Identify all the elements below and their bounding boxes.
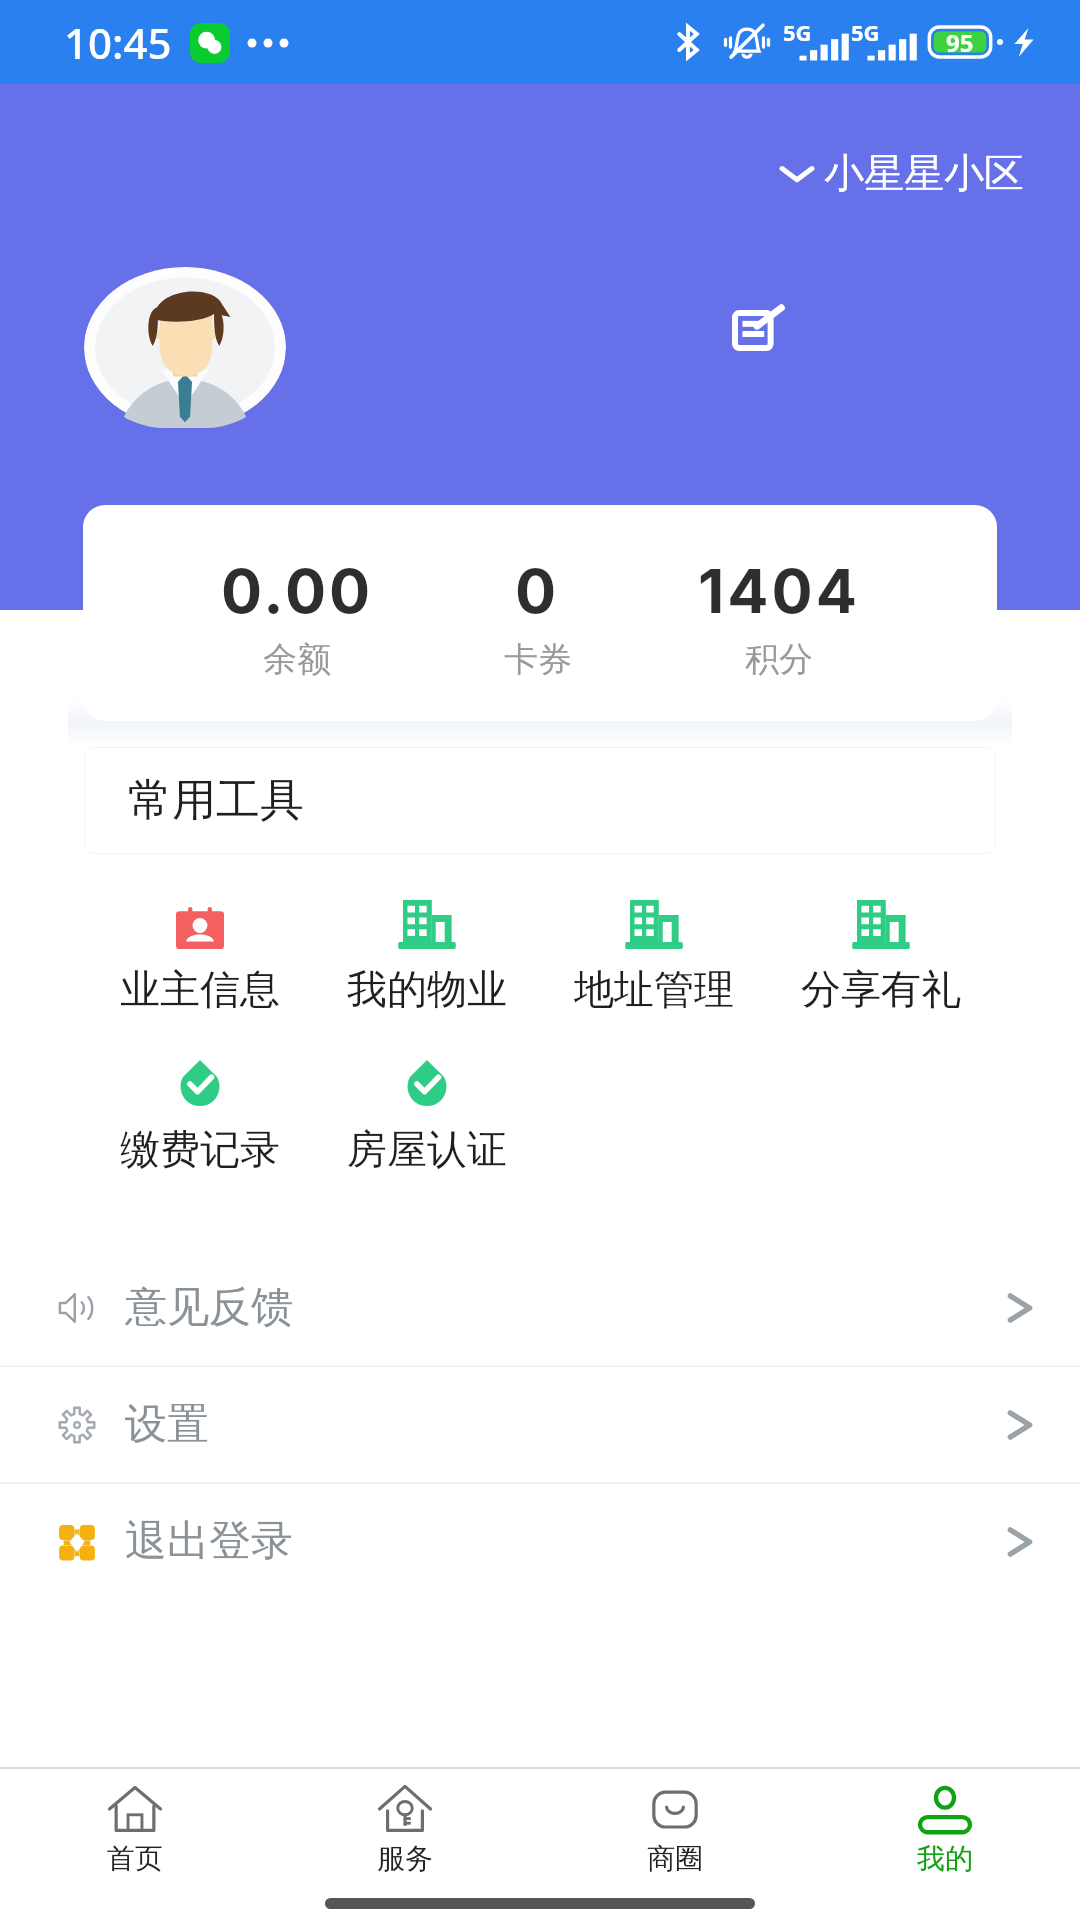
button[interactable]: 房屋认证: [313, 1055, 540, 1178]
staticText: 10:45: [64, 14, 172, 71]
button[interactable]: 小星星小区: [771, 142, 1028, 204]
staticText: 我的物业: [347, 964, 507, 1014]
staticText: 5G: [851, 17, 880, 47]
button[interactable]: 首页: [0, 1769, 270, 1887]
staticText: 服务: [377, 1841, 433, 1876]
staticText: 95: [946, 26, 974, 59]
button[interactable]: 我的: [810, 1769, 1080, 1887]
staticText: 房屋认证: [347, 1124, 507, 1174]
staticText: 0: [515, 554, 560, 628]
button[interactable]: 商圈: [540, 1769, 810, 1887]
staticText: 1404: [698, 554, 860, 628]
button[interactable]: 业主信息: [86, 895, 313, 1018]
staticText: 退出登录: [125, 1515, 293, 1568]
staticText: 余额: [263, 638, 331, 681]
staticText: 首页: [107, 1841, 163, 1876]
staticText: 缴费记录: [120, 1124, 280, 1174]
button[interactable]: 头像: [84, 267, 286, 428]
staticText: 卡券: [504, 638, 572, 681]
staticText: 意见反馈: [125, 1281, 293, 1334]
staticText: 常用工具: [128, 773, 304, 828]
button[interactable]: 地址管理: [540, 895, 767, 1018]
button[interactable]: 分享有礼: [767, 895, 994, 1018]
staticText: 积分: [745, 638, 813, 681]
button[interactable]: 退出登录: [0, 1484, 1080, 1599]
staticText: 分享有礼: [801, 964, 961, 1014]
button[interactable]: 服务: [270, 1769, 540, 1887]
button[interactable]: 编辑资料: [714, 284, 802, 372]
staticText: 商圈: [647, 1841, 703, 1876]
staticText: 小星星小区: [824, 148, 1024, 198]
button[interactable]: 缴费记录: [86, 1055, 313, 1178]
button[interactable]: 我的物业: [313, 895, 540, 1018]
staticText: 业主信息: [120, 964, 280, 1014]
button[interactable]: 设置: [0, 1367, 1080, 1482]
staticText: 0.00: [221, 554, 374, 628]
button[interactable]: 意见反馈: [0, 1250, 1080, 1365]
staticText: 地址管理: [574, 964, 734, 1014]
staticText: 5G: [783, 17, 812, 47]
staticText: 设置: [125, 1398, 209, 1451]
staticText: 我的: [917, 1841, 973, 1876]
